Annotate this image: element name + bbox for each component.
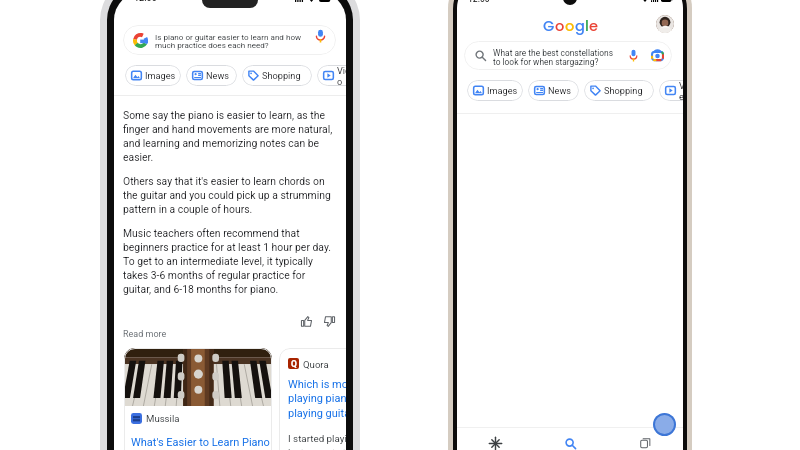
staticText: o [565,16,575,36]
staticText: o [555,16,565,36]
button[interactable]: Discover [457,428,533,450]
staticText: News [206,70,230,81]
button[interactable]: Video [659,80,683,101]
button[interactable]: Shopping [584,80,654,101]
button[interactable]: Is piano or guitar easier to learn and h… [123,25,336,55]
staticText: Others say that it's easier to learn cho… [123,175,335,216]
staticText: e [589,16,599,36]
staticText: Images [145,70,176,81]
button[interactable]: News [528,80,579,101]
staticText: Which is more difficult, playing piano o… [288,378,346,420]
staticText: Mussila [146,413,180,424]
button[interactable]: Tabs [608,428,683,450]
button[interactable]: Shopping [242,65,312,86]
staticText: 12:00 [468,0,490,4]
staticText: Is piano or guitar easier to learn and h… [155,32,302,50]
button[interactable]: Images [125,65,181,86]
staticText: Read more [123,329,167,340]
staticText: Quora [303,359,329,370]
staticText: g [575,16,585,36]
button[interactable]: Read more [123,329,167,340]
staticText: Q [291,359,297,369]
staticText: G [543,16,555,36]
staticText: 12:00 [134,0,157,4]
button[interactable]: Thumbs up [296,311,317,332]
button[interactable]: News [186,65,237,86]
staticText: News [548,85,572,96]
staticText: Music teachers often recommend that begi… [123,227,335,296]
staticText: Video [679,80,683,101]
button[interactable]: Search [533,428,608,450]
staticText: Images [487,85,518,96]
staticText: l [585,16,589,36]
staticText: Shopping [604,85,643,96]
staticText: What's Easier to Learn Piano or Guitar? [131,436,271,450]
button[interactable]: Q [279,348,346,450]
button[interactable]: Account [656,15,674,33]
button[interactable]: Mussila [124,348,272,450]
staticText: Video [337,65,346,86]
staticText: What are the best constellations to look… [493,48,622,67]
staticText: Shopping [262,70,301,81]
staticText: Some say the piano is easier to learn, a… [123,109,335,164]
staticText: I started playing musical instruments th… [288,433,346,450]
button[interactable]: What are the best constellations to look… [464,41,672,70]
button[interactable]: Thumbs down [319,311,340,332]
button[interactable]: Images [467,80,523,101]
button[interactable]: Video [317,65,346,86]
